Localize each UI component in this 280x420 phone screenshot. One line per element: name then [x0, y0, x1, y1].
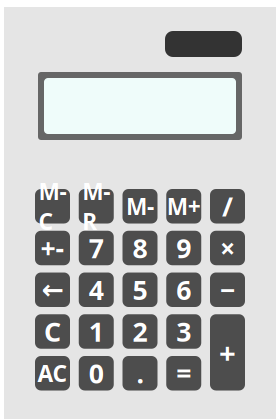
- button[interactable]: M-: [122, 189, 157, 223]
- staticText: 4: [89, 272, 104, 307]
- button[interactable]: MC: [35, 189, 70, 223]
- staticText: ×: [220, 230, 235, 266]
- button[interactable]: 2: [122, 314, 157, 349]
- button[interactable]: 6: [166, 272, 201, 307]
- staticText: 3: [176, 314, 191, 349]
- button[interactable]: MR: [79, 189, 114, 223]
- button[interactable]: ×: [210, 231, 245, 265]
- staticText: +-: [40, 230, 64, 266]
- staticText: 8: [132, 230, 147, 266]
- staticText: /: [222, 188, 233, 224]
- staticText: AC: [37, 358, 67, 388]
- staticText: +: [219, 333, 236, 372]
- button[interactable]: 3: [166, 314, 201, 349]
- button[interactable]: +-: [35, 231, 70, 265]
- staticText: −: [220, 272, 235, 307]
- staticText: =: [176, 355, 191, 391]
- button[interactable]: 1: [79, 314, 114, 349]
- staticText: 0: [89, 355, 104, 391]
- button[interactable]: AC: [35, 356, 70, 390]
- staticText: ←: [41, 275, 63, 305]
- button[interactable]: 8: [122, 231, 157, 265]
- staticText: 6: [176, 272, 191, 307]
- button[interactable]: 5: [122, 272, 157, 307]
- button[interactable]: ←: [35, 272, 70, 307]
- button[interactable]: 7: [79, 231, 114, 265]
- staticText: 2: [132, 314, 147, 349]
- staticText: 9: [176, 230, 191, 266]
- button[interactable]: 9: [166, 231, 201, 265]
- button[interactable]: /: [210, 189, 245, 223]
- staticText: 7: [89, 230, 104, 266]
- staticText: M+: [167, 191, 201, 221]
- button[interactable]: C: [35, 314, 70, 349]
- button[interactable]: .: [122, 356, 157, 390]
- staticText: C: [44, 314, 61, 349]
- staticText: 1: [89, 314, 104, 349]
- button[interactable]: +: [210, 314, 245, 390]
- button[interactable]: 0: [79, 356, 114, 390]
- button[interactable]: M+: [166, 189, 201, 223]
- staticText: 5: [132, 272, 147, 307]
- staticText: MC: [38, 176, 66, 236]
- staticText: M-: [126, 191, 154, 221]
- staticText: .: [136, 355, 143, 391]
- button[interactable]: 4: [79, 272, 114, 307]
- staticText: MR: [82, 176, 110, 236]
- button[interactable]: −: [210, 272, 245, 307]
- button[interactable]: =: [166, 356, 201, 390]
